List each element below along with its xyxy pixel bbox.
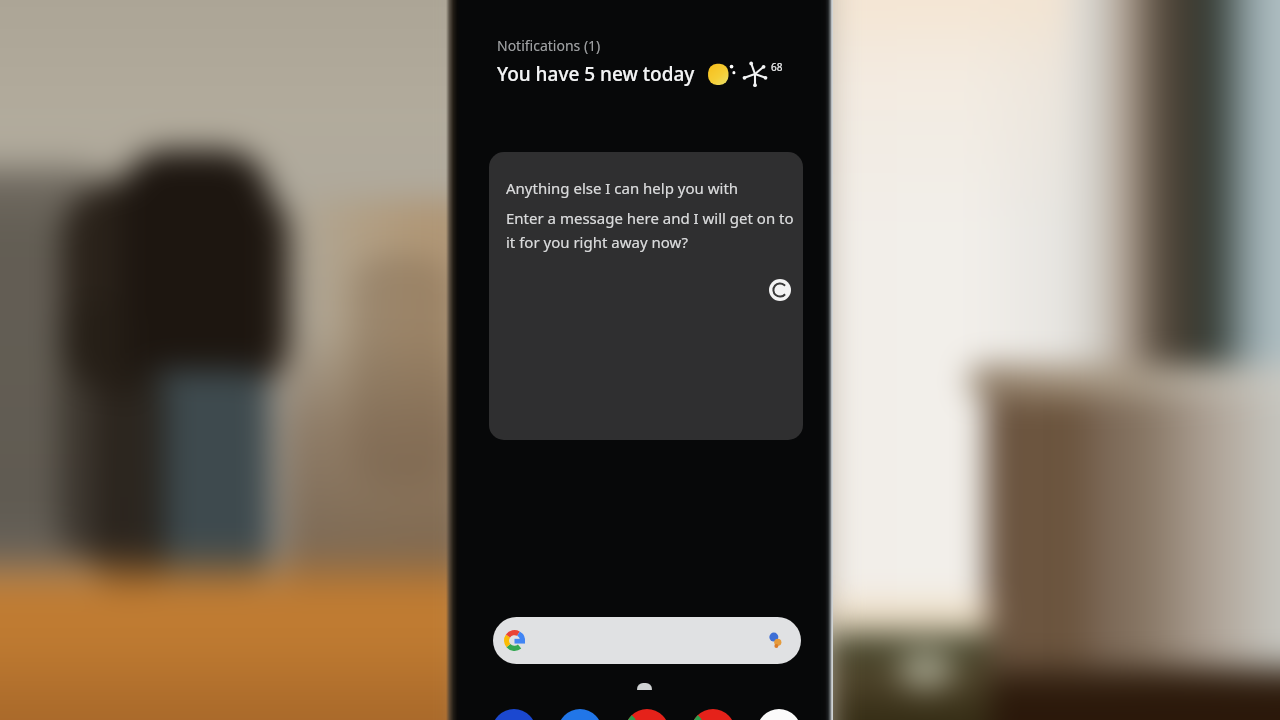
- other: Sunny: [704, 57, 738, 91]
- button[interactable]: Search: [493, 617, 801, 664]
- staticText: 68: [771, 60, 783, 74]
- staticText: Anything else I can help you with: [506, 178, 739, 198]
- button[interactable]: Notifications (1): [497, 36, 783, 91]
- button[interactable]: Gmail: [625, 709, 669, 720]
- button[interactable]: Anything else I can help you with: [489, 152, 803, 440]
- staticText: You have 5 new today: [497, 61, 695, 87]
- staticText: Notifications (1): [497, 36, 601, 55]
- button[interactable]: Messages: [558, 709, 602, 720]
- button[interactable]: Refresh: [769, 279, 791, 301]
- button[interactable]: Chrome: [691, 709, 735, 720]
- button[interactable]: Camera: [757, 709, 801, 720]
- other: Pollen: [741, 60, 769, 88]
- other: Google Assistant: [767, 631, 785, 649]
- button[interactable]: Phone: [492, 709, 536, 720]
- staticText: Enter a message here and I will get on t…: [506, 208, 794, 252]
